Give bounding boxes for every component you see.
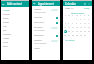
staticText: 27 — [68, 34, 71, 37]
staticText: 17 — [84, 26, 87, 29]
button[interactable]: Country — [1, 32, 29, 36]
button[interactable]: 1 — [75, 17, 79, 21]
staticText: 30 minutes — [34, 29, 45, 32]
staticText: Street — [3, 21, 10, 24]
button[interactable]: 10 — [83, 21, 87, 25]
staticText: 2 — [80, 18, 82, 21]
button[interactable]: 12 — [64, 25, 67, 29]
button[interactable]: Week 12 — [63, 6, 92, 10]
button[interactable]: 19 — [64, 29, 67, 33]
staticText: Today — [84, 7, 90, 10]
button[interactable]: 7 — [71, 21, 75, 25]
staticText: Type — [3, 41, 8, 44]
staticText: 6 — [68, 22, 70, 25]
button[interactable]: 5 — [64, 21, 67, 25]
button[interactable]: 11 — [87, 21, 91, 25]
button[interactable]: 17 — [83, 25, 87, 29]
button[interactable]: Subject — [32, 7, 60, 15]
button[interactable]: 27 — [67, 33, 71, 37]
staticText: 22 — [76, 30, 79, 33]
button[interactable]: No events — [63, 39, 92, 42]
button[interactable]: 29 — [75, 33, 79, 37]
staticText: Notes — [34, 47, 40, 50]
staticText: 20 — [68, 30, 71, 33]
staticText: 30 — [80, 34, 83, 37]
button[interactable]: 16 — [79, 25, 83, 29]
button[interactable]: Notes — [1, 36, 29, 40]
staticText: M — [68, 14, 70, 17]
staticText: Reminder — [34, 34, 44, 37]
button[interactable]: Tags — [1, 44, 29, 48]
button[interactable]: Email — [1, 16, 29, 20]
staticText: Duration — [34, 26, 43, 29]
button[interactable]: 6 — [67, 21, 71, 25]
button[interactable]: Type — [1, 40, 29, 44]
button[interactable]: 21 — [71, 29, 75, 33]
button[interactable]: 9 — [79, 21, 83, 25]
staticText: Name — [3, 9, 10, 12]
staticText: 1 — [76, 18, 78, 21]
button[interactable]: City — [1, 24, 29, 28]
staticText: 11 — [88, 22, 91, 25]
staticText: Tags — [3, 45, 8, 48]
button[interactable]: 18 — [87, 25, 91, 29]
staticText: 16 — [80, 26, 83, 29]
button[interactable]: Name — [1, 8, 29, 12]
button[interactable]: Street — [1, 20, 29, 24]
button[interactable]: Reminder — [32, 33, 60, 38]
button[interactable]: 26 — [64, 33, 67, 37]
button[interactable]: Phone — [1, 12, 29, 16]
staticText: T — [72, 14, 74, 17]
button[interactable]: Back — [1, 1, 29, 7]
button[interactable]: 22 — [75, 29, 79, 33]
staticText: Add contact — [7, 2, 22, 6]
button[interactable]: 15 — [75, 25, 79, 29]
staticText: 9 — [80, 22, 82, 25]
staticText: 18 — [88, 26, 91, 29]
staticText: 19 — [64, 30, 67, 33]
button[interactable]: Calendar — [63, 1, 92, 6]
button[interactable]: Start time — [32, 20, 60, 25]
staticText: 15 — [76, 26, 79, 29]
staticText: 21 — [72, 30, 75, 33]
staticText: 4 — [88, 18, 90, 21]
staticText: 25 — [88, 30, 91, 33]
button[interactable]: 14 — [71, 25, 75, 29]
button[interactable]: 28 — [71, 33, 75, 37]
button[interactable]: 4 — [87, 17, 91, 21]
button[interactable]: Back — [32, 1, 60, 6]
button[interactable]: 20 — [67, 29, 71, 33]
staticText: 5 — [65, 22, 67, 25]
button[interactable]: 2 — [79, 17, 83, 21]
button[interactable]: Invitees — [32, 38, 60, 46]
staticText: T — [80, 14, 82, 17]
button[interactable]: 8 — [75, 21, 79, 25]
staticText: Consultation — [34, 11, 46, 14]
staticText: Start time — [34, 21, 44, 24]
staticText: Email — [3, 17, 9, 20]
staticText: 26 — [64, 34, 67, 37]
staticText: Invitees — [34, 39, 42, 42]
button[interactable]: Location — [32, 15, 60, 20]
staticText: City — [3, 25, 7, 28]
button[interactable]: 24 — [83, 29, 87, 33]
staticText: 12 — [64, 26, 67, 29]
button[interactable]: 30 — [79, 33, 83, 37]
staticText: March 2024 — [71, 11, 85, 14]
button[interactable]: 31 — [83, 33, 87, 37]
staticText: Country — [3, 33, 12, 36]
button[interactable]: 3 — [83, 17, 87, 21]
button[interactable]: 13 — [67, 25, 71, 29]
button[interactable]: Zip — [1, 28, 29, 32]
button[interactable]: 25 — [87, 29, 91, 33]
button[interactable]: 23 — [79, 29, 83, 33]
button[interactable]: Notes — [32, 46, 60, 51]
button[interactable]: Duration — [32, 25, 60, 33]
staticText: Subject — [34, 8, 42, 11]
other: Search — [84, 3, 86, 5]
